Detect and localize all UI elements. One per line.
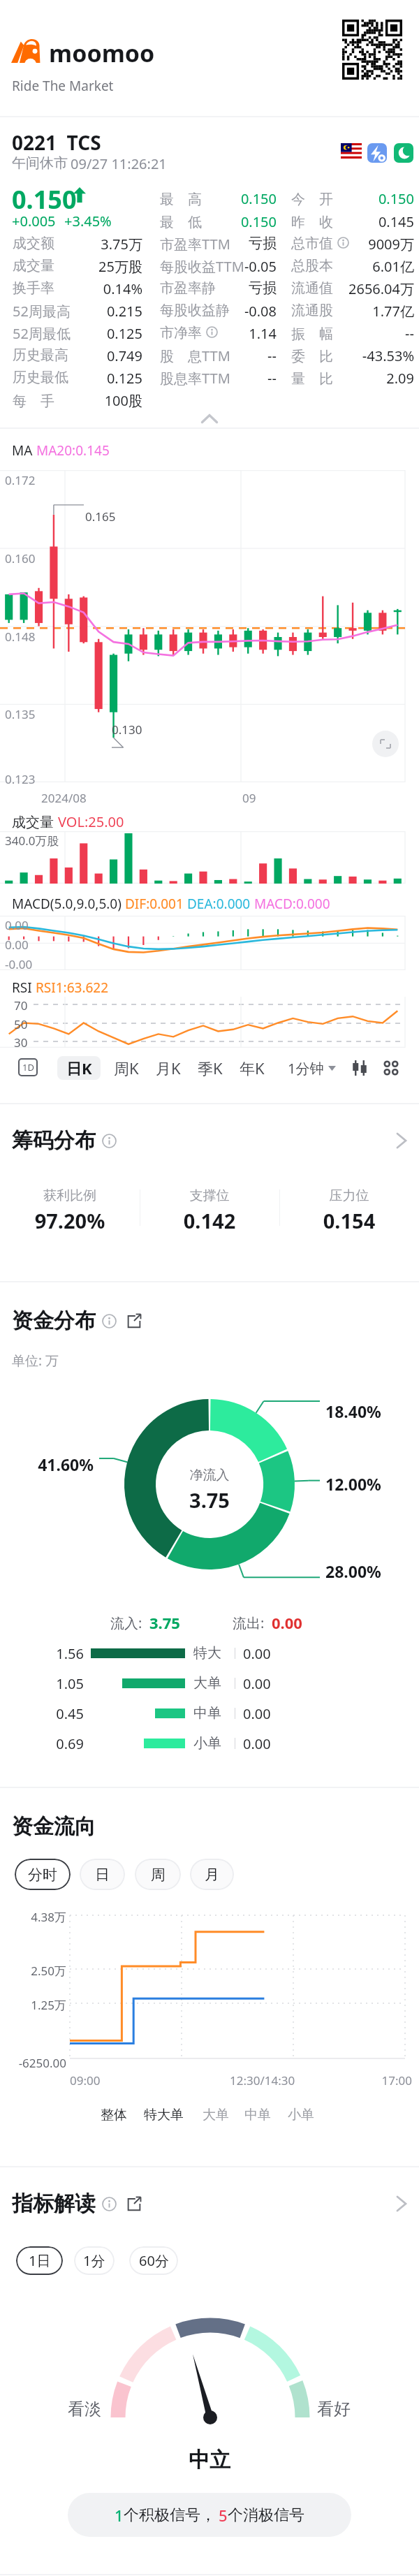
staticText: +0.005 xyxy=(12,212,56,230)
staticText: 1 xyxy=(115,2505,124,2526)
staticText: DIF:0.001 xyxy=(125,895,187,913)
button[interactable]: 特大单 xyxy=(144,2107,184,2123)
staticText: -0.08 xyxy=(137,302,277,321)
staticText: 0.00 xyxy=(243,1734,271,1753)
staticText: 成交量 xyxy=(12,812,58,831)
button[interactable]: 小单 xyxy=(288,2107,314,2123)
staticText: 0.123 xyxy=(5,771,36,787)
staticText: 个积极信号， xyxy=(124,2505,216,2525)
staticText: MACD(5.0,9.0,5.0) xyxy=(12,895,125,913)
staticText: 340.0万股 xyxy=(5,833,59,849)
staticText: 大单 xyxy=(203,2107,229,2123)
staticText: 0.150 xyxy=(274,189,414,208)
staticText: 0.00 xyxy=(243,1704,271,1723)
staticText: 年K xyxy=(240,1058,265,1078)
staticText: 净流入 xyxy=(154,1467,265,1484)
button[interactable]: 1分钟 xyxy=(288,1056,336,1080)
button[interactable]: 整体 xyxy=(101,2107,127,2123)
staticText: 中立 xyxy=(126,2447,293,2473)
staticText: 6.01亿 xyxy=(274,257,414,276)
staticText: 0.150 xyxy=(137,189,277,208)
staticText: -- xyxy=(274,324,414,343)
staticText: 压力位 xyxy=(265,1187,419,1204)
staticText: 0.749 xyxy=(3,346,142,365)
staticText: 支撑位 xyxy=(126,1187,293,1204)
staticText: 流出: xyxy=(233,1613,265,1632)
button[interactable]: Share xyxy=(126,1313,142,1329)
button[interactable]: 1 xyxy=(68,2493,351,2537)
staticText: 成交量 xyxy=(13,257,54,275)
staticText: 日K xyxy=(66,1058,92,1078)
staticText: 2.50万 xyxy=(0,1963,66,1979)
staticText: 特大单 xyxy=(144,2107,184,2123)
staticText: -6250.00 xyxy=(0,2055,66,2071)
staticText: 资金分布 xyxy=(12,1308,96,1334)
button[interactable]: 周K xyxy=(112,1056,140,1080)
staticText: 28.00% xyxy=(325,1560,381,1582)
staticText: 振 幅 xyxy=(291,324,333,343)
button[interactable]: 1日 xyxy=(16,2246,63,2275)
staticText: 100股 xyxy=(3,391,142,410)
staticText: 午间休市 xyxy=(12,154,68,172)
staticText: 18.40% xyxy=(325,1400,381,1422)
button[interactable]: 月 xyxy=(190,1859,234,1890)
button[interactable]: 月K xyxy=(154,1056,182,1080)
staticText: 3.75 xyxy=(149,1612,180,1633)
staticText: 0.160 xyxy=(5,550,36,566)
staticText: 月K xyxy=(156,1058,181,1078)
button[interactable]: 年K xyxy=(238,1056,266,1080)
staticText: -- xyxy=(137,346,277,365)
staticText: 2656.04万 xyxy=(274,279,414,298)
staticText: 30 xyxy=(14,1034,28,1051)
staticText: 月 xyxy=(205,1866,219,1884)
staticText: 市净率 xyxy=(160,324,202,342)
staticText: 分时 xyxy=(28,1866,57,1884)
button[interactable]: 分时 xyxy=(15,1859,71,1890)
staticText: 0.148 xyxy=(5,629,36,645)
button[interactable]: Candlestick style xyxy=(348,1056,372,1080)
staticText: 0.00 xyxy=(272,1612,302,1633)
staticText: 中单 xyxy=(193,1704,221,1722)
staticText: 41.60% xyxy=(10,1454,94,1475)
staticText: 0.154 xyxy=(265,1207,419,1234)
staticText: 97.20% xyxy=(0,1207,154,1234)
staticText: 4.38万 xyxy=(0,1909,66,1925)
staticText: 1.14 xyxy=(137,324,277,343)
button[interactable]: 周 xyxy=(135,1859,181,1890)
button[interactable]: 大单 xyxy=(203,2107,229,2123)
staticText: 总市值 xyxy=(291,235,333,252)
staticText: 1D xyxy=(22,1061,34,1074)
staticText: 筹码分布 xyxy=(12,1127,96,1154)
staticText: 0.165 xyxy=(85,508,116,525)
button[interactable]: 1分 xyxy=(74,2246,115,2275)
staticText: 季K xyxy=(198,1058,223,1078)
button[interactable]: 1D xyxy=(18,1058,38,1076)
staticText: 中单 xyxy=(244,2107,271,2123)
button[interactable]: 筹码分布 xyxy=(12,1127,407,1154)
staticText: 周 xyxy=(151,1866,166,1884)
staticText: 1.25万 xyxy=(0,1997,66,2013)
button[interactable]: More indicators xyxy=(379,1056,403,1080)
staticText: Ride The Market xyxy=(12,77,114,95)
button[interactable]: 中单 xyxy=(244,2107,271,2123)
button[interactable]: 日 xyxy=(80,1859,125,1890)
staticText: 2024/08 xyxy=(41,790,87,806)
staticText: -43.53% xyxy=(274,346,414,365)
staticText: 70 xyxy=(14,997,28,1013)
staticText: 1.77亿 xyxy=(274,302,414,321)
staticText: 09:00 xyxy=(70,2072,101,2088)
staticText: 流通股 xyxy=(291,302,333,319)
staticText: 今 开 xyxy=(291,189,333,208)
staticText: 周K xyxy=(114,1058,139,1078)
staticText: 17:00 xyxy=(356,2072,412,2088)
staticText: 亏损 xyxy=(137,235,277,252)
staticText: 1日 xyxy=(29,2251,51,2270)
staticText: MA20:0.145 xyxy=(36,441,110,460)
button[interactable]: 60分 xyxy=(129,2246,178,2275)
staticText: RSI xyxy=(12,979,36,997)
staticText: 股 息TTM xyxy=(160,346,230,365)
button[interactable]: 日K xyxy=(57,1056,101,1080)
button[interactable]: 指标解读 xyxy=(12,2190,407,2217)
button[interactable]: 季K xyxy=(196,1056,224,1080)
staticText: 09 xyxy=(242,790,256,806)
